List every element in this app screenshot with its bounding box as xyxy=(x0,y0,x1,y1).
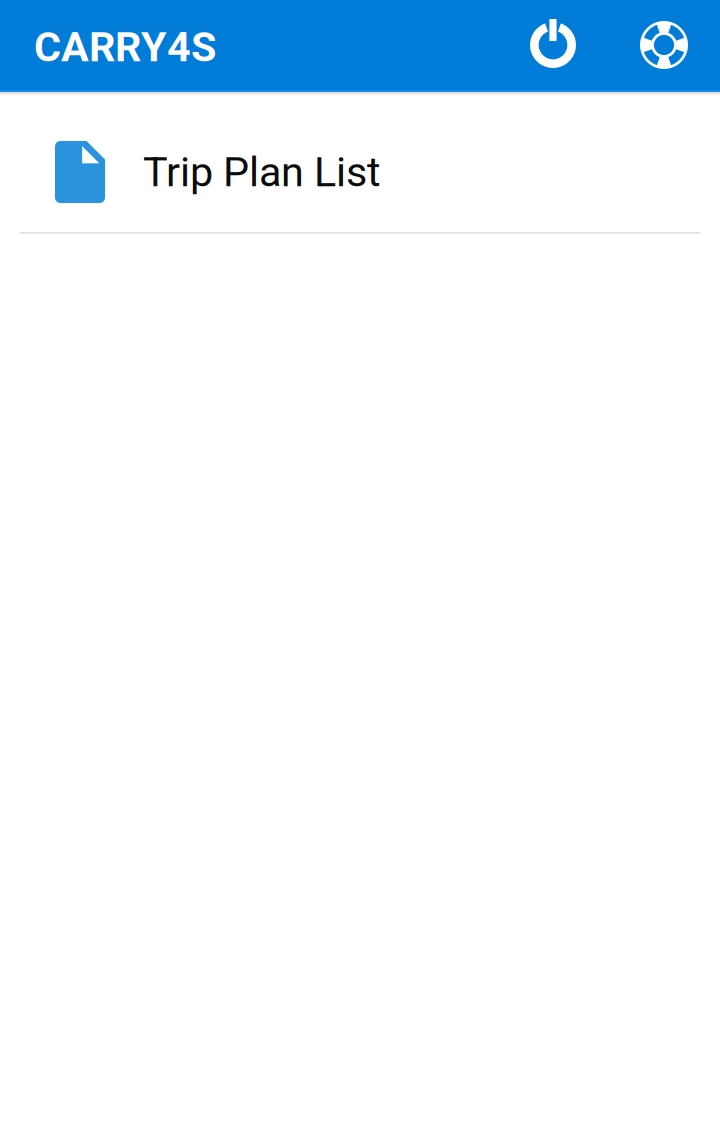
button[interactable]: Power xyxy=(508,0,598,90)
button[interactable]: Trip Plan List xyxy=(0,95,720,234)
button[interactable]: Help xyxy=(619,0,709,90)
staticText: CARRY4S xyxy=(34,23,216,71)
staticText: Trip Plan List xyxy=(143,148,381,196)
